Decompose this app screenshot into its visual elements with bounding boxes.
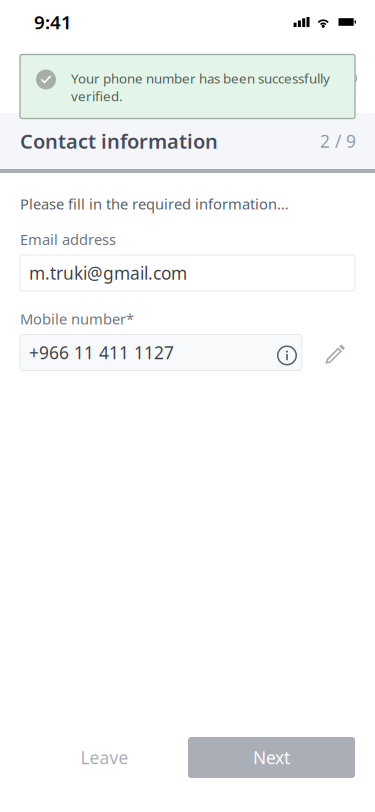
staticText: Email address <box>20 229 116 249</box>
button[interactable]: Edit mobile number <box>302 334 353 370</box>
staticText: Next <box>253 746 290 769</box>
staticText: Please fill in the required information… <box>20 194 289 213</box>
staticText: Contact information <box>20 128 218 154</box>
button[interactable]: Leave <box>48 737 161 778</box>
staticText: Mobile number* <box>20 309 134 328</box>
button[interactable]: Next <box>188 737 355 778</box>
staticText: m.truki@gmail.com <box>29 261 187 284</box>
staticText: Leave <box>80 746 128 769</box>
staticText: 9:41 <box>34 10 72 34</box>
staticText: Your phone number has been successfully … <box>71 69 330 105</box>
button[interactable]: Dismiss <box>346 73 356 83</box>
staticText: 2 / 9 <box>320 129 356 152</box>
staticText: +966 11 411 1127 <box>29 341 174 364</box>
